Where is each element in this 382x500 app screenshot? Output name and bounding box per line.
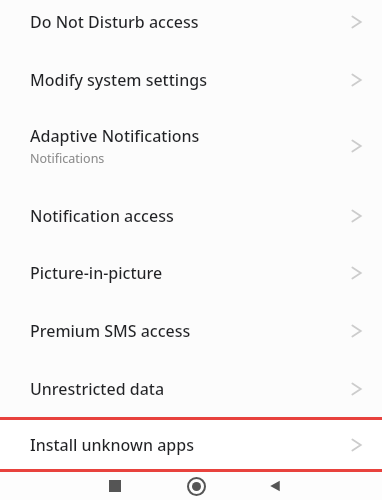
button[interactable]: Adaptive Notifications [0,118,382,174]
staticText: Notification access [30,205,174,227]
staticText: Do Not Disturb access [30,11,199,33]
button[interactable]: Install unknown apps [0,420,382,469]
button[interactable]: Modify system settings [0,58,382,102]
button[interactable]: Back [261,472,289,500]
button[interactable]: Home [182,472,210,500]
staticText: Unrestricted data [30,378,165,400]
staticText: Premium SMS access [30,320,191,342]
staticText: Picture-in-picture [30,262,163,284]
staticText: Notifications [30,150,105,167]
staticText: Install unknown apps [30,434,194,456]
staticText: Adaptive Notifications [30,125,200,147]
button[interactable]: Recent apps [101,472,129,500]
staticText: Modify system settings [30,69,207,91]
button[interactable]: Unrestricted data [0,367,382,411]
button[interactable]: Premium SMS access [0,309,382,353]
button[interactable]: Notification access [0,194,382,238]
button[interactable]: Do Not Disturb access [0,0,382,44]
button[interactable]: Picture-in-picture [0,251,382,295]
